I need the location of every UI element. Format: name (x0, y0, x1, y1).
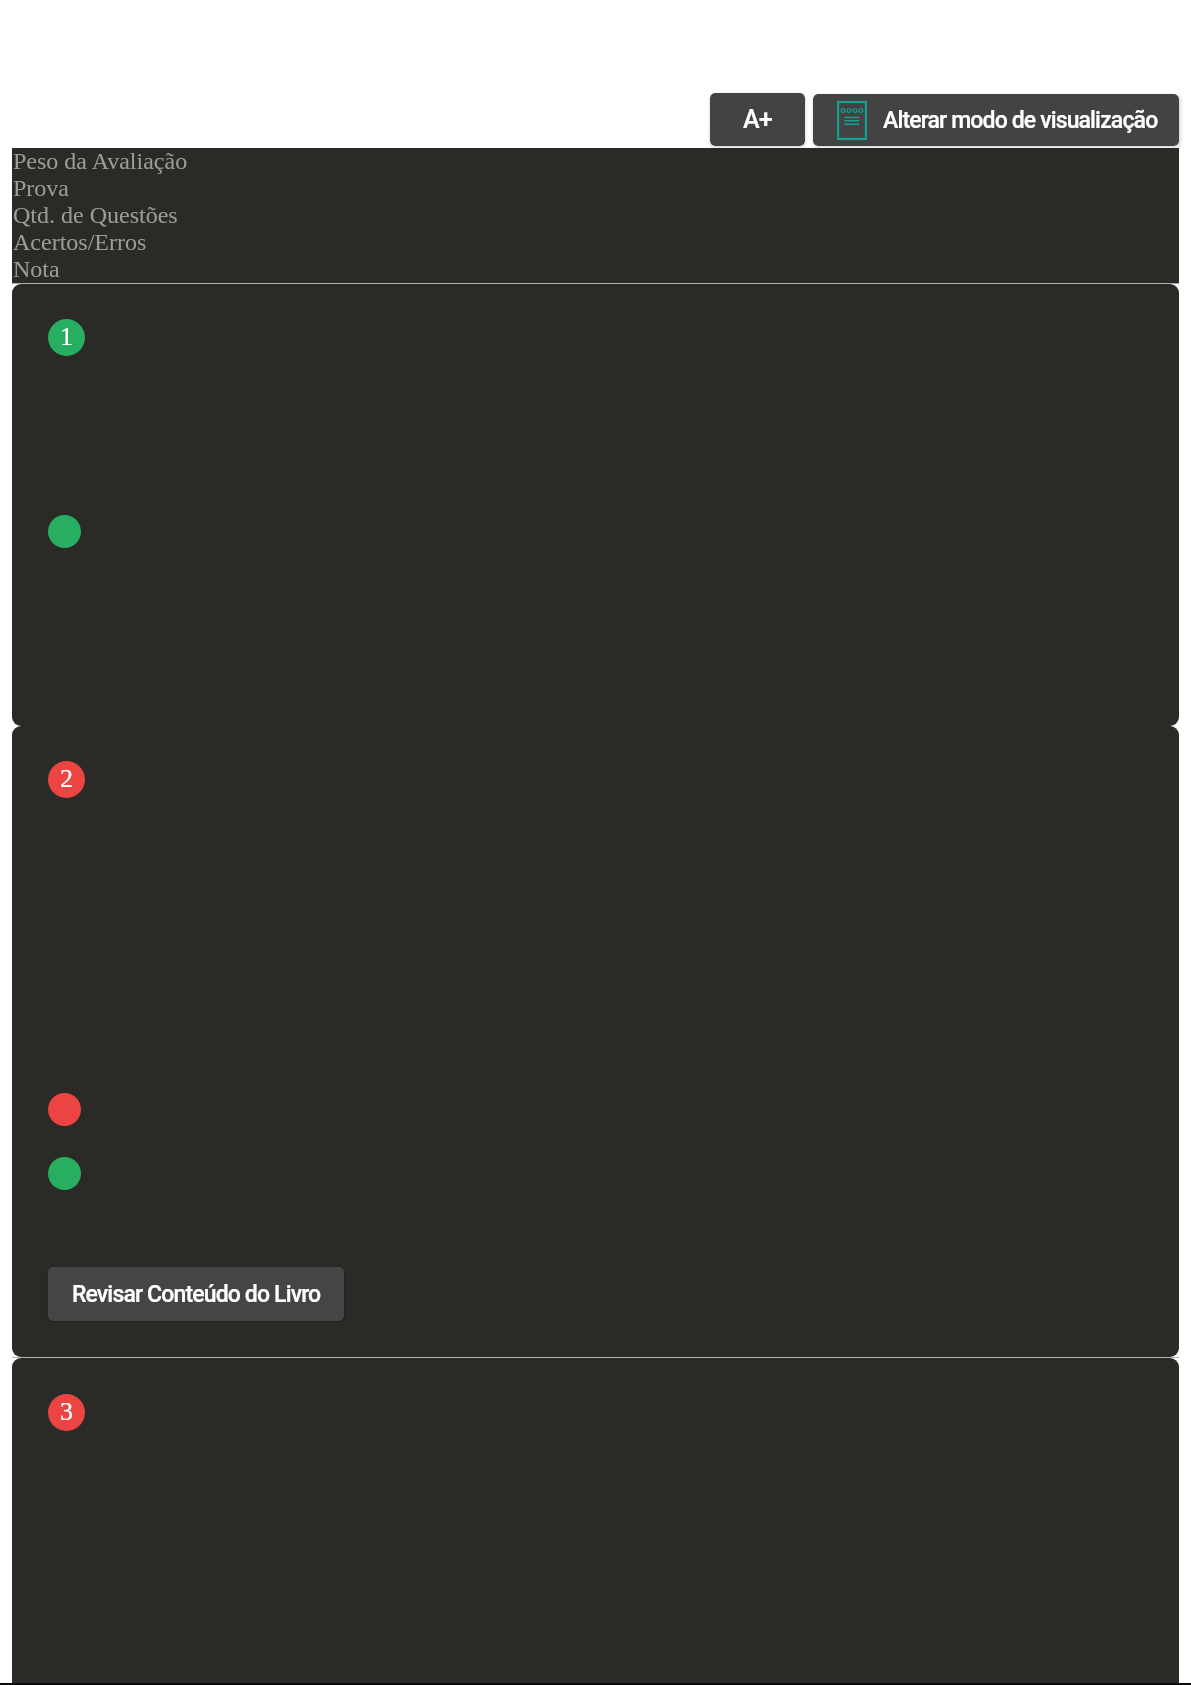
button[interactable]: 2 (12, 726, 1179, 1357)
staticText: 3 (60, 1397, 73, 1426)
staticText: Alterar modo de visualização (883, 107, 1158, 134)
staticText: 2 (60, 764, 73, 793)
staticText: 1 (60, 322, 73, 351)
staticText: Acertos/Erros (13, 229, 147, 256)
button[interactable]: 1 (12, 284, 1179, 726)
staticText: Nota (13, 256, 60, 283)
button[interactable]: A+ (710, 93, 805, 146)
staticText: Revisar Conteúdo do Livro (72, 1281, 321, 1308)
staticText: A+ (743, 105, 772, 134)
staticText: Qtd. de Questões (13, 202, 178, 229)
button[interactable]: Revisar Conteúdo do Livro (48, 1267, 344, 1321)
button[interactable]: Alterar modo de visualização (813, 94, 1179, 146)
staticText: Prova (13, 175, 69, 202)
button[interactable]: 3 (12, 1358, 1179, 1683)
other: Alterar modo de visualização (837, 101, 867, 140)
staticText: Peso da Avaliação (13, 148, 188, 175)
